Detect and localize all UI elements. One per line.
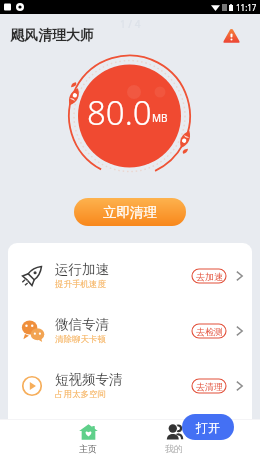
button[interactable]: 短视频专清 xyxy=(8,358,252,413)
staticText: 占用太多空间 xyxy=(55,389,106,400)
staticText: 微信专清 xyxy=(55,316,109,333)
button[interactable]: 运行加速 xyxy=(8,248,252,303)
button[interactable]: 我的 xyxy=(150,424,198,454)
staticText: 清除聊天卡顿 xyxy=(55,334,106,345)
staticText: 飓风清理大师 xyxy=(10,27,94,45)
staticText: 立即清理 xyxy=(103,204,157,221)
staticText: 1 / 4 xyxy=(120,17,141,31)
staticText: 提升手机速度 xyxy=(55,279,106,290)
button[interactable]: 去加速 xyxy=(192,269,226,283)
staticText: 80.0 xyxy=(87,90,152,135)
button[interactable]: 主页 xyxy=(64,424,112,454)
button[interactable]: 去检测 xyxy=(192,324,226,338)
staticText: 去检测 xyxy=(196,326,223,337)
button[interactable]: 立即清理 xyxy=(74,198,186,226)
staticText: 主页 xyxy=(79,443,97,454)
staticText: 短视频专清 xyxy=(55,371,123,388)
staticText: 11:17 xyxy=(236,2,257,13)
staticText: 运行加速 xyxy=(55,261,109,278)
staticText: MB xyxy=(152,111,168,125)
button[interactable]: 微信专清 xyxy=(8,303,252,358)
button[interactable]: 打开 xyxy=(182,414,234,440)
staticText: 打开 xyxy=(196,420,220,435)
staticText: 我的 xyxy=(165,443,183,454)
staticText: 去清理 xyxy=(196,381,223,392)
button[interactable]: 去清理 xyxy=(192,379,226,393)
staticText: 去加速 xyxy=(196,271,223,282)
button[interactable]: Warning xyxy=(223,28,240,43)
